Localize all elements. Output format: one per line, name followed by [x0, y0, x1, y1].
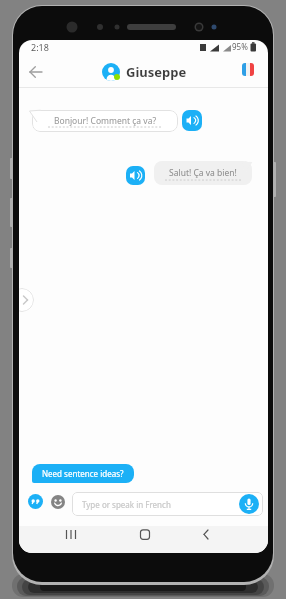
button[interactable]: Need sentence ideas? — [32, 464, 134, 483]
staticText: 95% — [232, 41, 248, 52]
staticText: Bonjour! Comment ça va? — [54, 115, 157, 127]
staticText: Need sentence ideas? — [42, 468, 124, 479]
button[interactable] — [23, 59, 49, 85]
button[interactable] — [182, 110, 202, 131]
button[interactable] — [239, 494, 259, 514]
staticText: Giuseppe — [126, 63, 187, 81]
button[interactable] — [51, 495, 65, 509]
button[interactable] — [126, 166, 145, 185]
staticText: Type or speak in French — [82, 499, 171, 510]
staticText: Salut! Ça va bien! — [169, 167, 237, 179]
button[interactable] — [28, 494, 43, 509]
button[interactable]: Salut! Ça va bien! — [154, 161, 252, 185]
button[interactable] — [19, 288, 34, 312]
button[interactable] — [242, 63, 254, 76]
staticText: 2:18 — [31, 41, 49, 53]
button[interactable]: Type or speak in French — [72, 492, 263, 516]
button[interactable]: Bonjour! Comment ça va? — [32, 110, 178, 132]
